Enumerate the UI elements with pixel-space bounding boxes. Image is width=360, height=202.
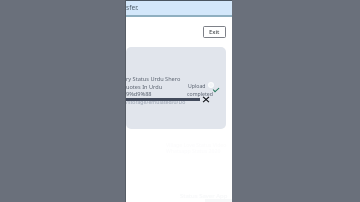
staticText: sfer. — [126, 3, 139, 12]
button[interactable]: Exit — [203, 26, 226, 38]
staticText: uotes In Urdu — [126, 83, 163, 91]
staticText: 9%d9%88 — [126, 90, 152, 98]
staticText: Exit — [209, 28, 220, 36]
staticText: completed — [187, 90, 213, 97]
staticText: Upload — [188, 82, 206, 89]
staticText: ry Status Urdu Shero — [126, 75, 181, 83]
button[interactable]: /storage/emulated/0/Do — [126, 47, 226, 129]
button[interactable]: Cancel download — [203, 97, 209, 102]
staticText: /storage/emulated/0/Do — [126, 98, 186, 105]
